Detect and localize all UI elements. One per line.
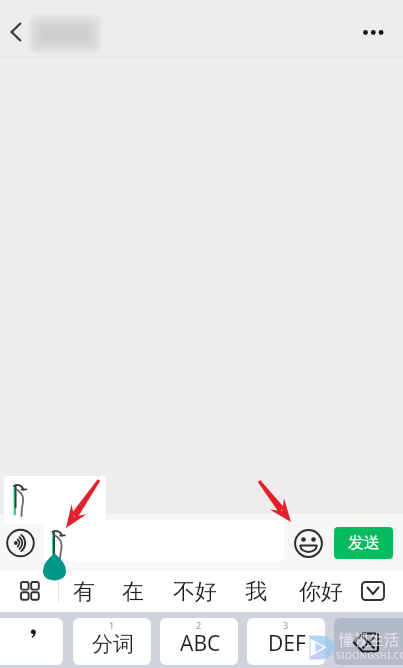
staticText: 3 <box>283 619 289 631</box>
staticText: 在 <box>122 578 144 606</box>
button[interactable]: Back <box>0 9 38 47</box>
staticText: 我 <box>245 578 267 606</box>
button[interactable]: 3 <box>247 618 325 665</box>
button[interactable]: 我 <box>235 571 276 612</box>
staticText: ABC <box>180 629 221 658</box>
button[interactable]: Keyboard layout <box>10 571 51 612</box>
button[interactable]: More options <box>353 13 393 53</box>
staticText: 分词 <box>92 631 134 657</box>
staticText: 懂视生活 <box>339 631 399 650</box>
button[interactable]: 你好 <box>288 571 353 612</box>
button[interactable]: Comma <box>0 618 63 665</box>
button[interactable]: 1 <box>73 618 151 665</box>
staticText: DEF <box>268 629 306 658</box>
staticText: SIDONGSHI.COM <box>336 649 403 661</box>
button[interactable]: 有 <box>63 571 104 612</box>
button[interactable]: Emoji <box>289 524 328 563</box>
button[interactable]: 2 <box>160 618 238 665</box>
staticText: 你好 <box>299 578 343 606</box>
button[interactable]: Backspace <box>334 618 403 665</box>
button[interactable] <box>44 520 284 562</box>
staticText: 1 <box>109 619 115 631</box>
staticText: 发送 <box>348 533 380 553</box>
staticText: 有 <box>73 578 95 606</box>
staticText: 2 <box>196 619 202 631</box>
button[interactable]: 不好 <box>162 571 227 612</box>
button[interactable]: Voice input <box>1 524 40 563</box>
staticText: 不好 <box>173 578 217 606</box>
button[interactable]: 在 <box>112 571 153 612</box>
button[interactable]: Expand suggestions <box>353 571 393 611</box>
button[interactable]: 发送 <box>334 527 393 559</box>
